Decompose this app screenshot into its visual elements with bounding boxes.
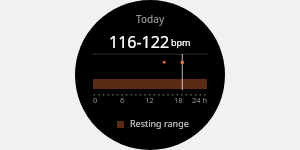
staticText: Resting range: [130, 117, 189, 129]
button[interactable]: Resting range: [117, 117, 189, 129]
staticText: 18: [174, 95, 183, 105]
staticText: 0: [93, 95, 98, 105]
staticText: 24 h: [192, 95, 208, 105]
staticText: bpm: [171, 36, 191, 48]
staticText: 116-122: [109, 31, 170, 53]
staticText: Today: [136, 12, 165, 26]
staticText: 6: [120, 95, 125, 105]
staticText: 12: [145, 95, 154, 105]
